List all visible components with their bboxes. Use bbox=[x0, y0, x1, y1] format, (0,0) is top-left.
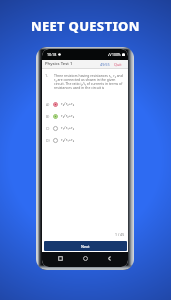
button[interactable]: Back bbox=[104, 253, 115, 264]
staticText: r₁/r₁+r₂ bbox=[61, 125, 75, 131]
button[interactable]: B) bbox=[46, 110, 128, 122]
button[interactable]: Next bbox=[44, 241, 127, 251]
button[interactable]: Recents bbox=[55, 253, 66, 264]
staticText: Quit bbox=[114, 62, 122, 67]
staticText: r₂/r₂+r₃ bbox=[61, 113, 75, 119]
staticText: 100% bbox=[112, 52, 121, 57]
button[interactable]: D) bbox=[46, 134, 128, 146]
staticText: r₃/r₂+r₃ bbox=[61, 101, 75, 107]
staticText: B) bbox=[46, 114, 50, 119]
button[interactable]: Home bbox=[80, 253, 91, 264]
staticText: A) bbox=[46, 102, 50, 107]
staticText: r₃/r₁+r₃ bbox=[61, 137, 75, 143]
staticText: Next bbox=[81, 244, 90, 249]
staticText: Physics Test 1 bbox=[45, 61, 73, 67]
staticText: 49:55 bbox=[100, 62, 110, 67]
staticText: 1 / 45 bbox=[115, 232, 125, 237]
staticText: C) bbox=[46, 126, 50, 131]
staticText: NEET QUESTION bbox=[31, 17, 140, 35]
staticText: Three resistors having resistances r₁, r… bbox=[54, 73, 124, 90]
staticText: 1. bbox=[45, 73, 49, 78]
staticText: 10:18 bbox=[47, 52, 57, 57]
button[interactable]: A) bbox=[46, 98, 128, 110]
button[interactable]: C) bbox=[46, 122, 128, 134]
staticText: D) bbox=[46, 138, 50, 143]
